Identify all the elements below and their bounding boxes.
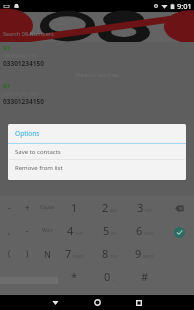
staticText: -	[8, 202, 11, 213]
button[interactable]: 0	[92, 265, 127, 288]
button[interactable]: N	[36, 242, 58, 265]
button[interactable]: Home	[76, 295, 118, 310]
button[interactable]: Back	[34, 295, 76, 310]
staticText: Save to contacts	[15, 148, 61, 156]
button[interactable]: BT	[0, 44, 194, 68]
staticText: 5	[103, 223, 110, 238]
button[interactable]: 4	[57, 219, 92, 242]
staticText: 4	[67, 223, 74, 238]
staticText: 6	[136, 223, 143, 238]
staticText: ,	[8, 225, 11, 236]
staticText: WXYZ	[143, 254, 154, 259]
staticText: DEF	[145, 208, 153, 213]
button[interactable]: Save to contacts	[8, 144, 186, 159]
button[interactable]: Call	[164, 220, 194, 245]
button[interactable]: 7	[57, 242, 92, 265]
staticText: Search 08 Numbers	[3, 30, 54, 37]
staticText: 9	[135, 246, 142, 261]
staticText: 9:01	[177, 1, 192, 11]
button[interactable]: Pause	[36, 196, 58, 219]
button[interactable]: )	[18, 242, 36, 265]
button[interactable]: Search 08 Numbers	[0, 12, 194, 42]
staticText: BT	[3, 82, 11, 90]
staticText: 03301234150	[3, 59, 44, 68]
staticText: BT	[3, 44, 11, 52]
button[interactable]: Wait	[36, 219, 58, 242]
button[interactable]: 2	[92, 196, 127, 219]
staticText: Options	[15, 129, 40, 138]
button[interactable]: Remove from list	[8, 160, 186, 175]
staticText: #	[141, 269, 149, 284]
button[interactable]: Backspace	[164, 196, 194, 220]
staticText: 2	[102, 200, 109, 215]
staticText: 03301234150	[3, 97, 44, 106]
button[interactable]: 3	[127, 196, 162, 219]
staticText: 0	[104, 269, 111, 284]
button[interactable]: +	[18, 196, 36, 219]
staticText: 8	[102, 246, 109, 261]
staticText: ABC	[110, 208, 118, 213]
staticText: Pause	[40, 204, 55, 211]
button[interactable]: BT	[0, 82, 194, 106]
staticText: JKL	[111, 231, 117, 236]
staticText: PQRS	[73, 254, 84, 259]
button[interactable]: #	[127, 265, 162, 288]
staticText: (	[8, 248, 11, 259]
staticText: GHI	[75, 231, 83, 236]
button[interactable]: Recent apps	[118, 295, 160, 310]
button[interactable]: 5	[92, 219, 127, 242]
button[interactable]: 9	[127, 242, 162, 265]
staticText: Remove from list	[15, 164, 63, 172]
button[interactable]: (	[0, 242, 18, 265]
staticText: *	[71, 269, 78, 284]
staticText: )	[26, 248, 29, 259]
button[interactable]: *	[57, 265, 92, 288]
staticText: 3	[137, 200, 144, 215]
button[interactable]: 6	[127, 219, 162, 242]
staticText: 7	[65, 246, 72, 261]
staticText: 1	[71, 200, 78, 215]
button[interactable]: 8	[92, 242, 127, 265]
staticText: TUV	[110, 254, 118, 259]
button[interactable]: 1	[57, 196, 92, 219]
staticText: MNO	[144, 231, 154, 236]
staticText: +	[25, 202, 30, 213]
staticText: Wait	[42, 227, 53, 234]
staticText: N	[44, 248, 51, 260]
staticText: -	[26, 225, 29, 236]
